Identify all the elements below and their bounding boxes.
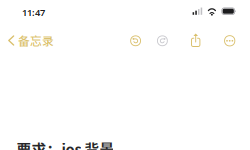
button[interactable]: Undo [126,31,146,51]
staticText: 备忘录 [18,32,54,49]
staticText: 要求：ios 背景 [16,138,114,150]
button[interactable]: Redo [152,31,172,51]
button[interactable]: Share [186,27,206,48]
button[interactable]: More [220,31,240,51]
button[interactable]: 备忘录 [2,29,58,52]
staticText: 11:47 [22,6,45,19]
